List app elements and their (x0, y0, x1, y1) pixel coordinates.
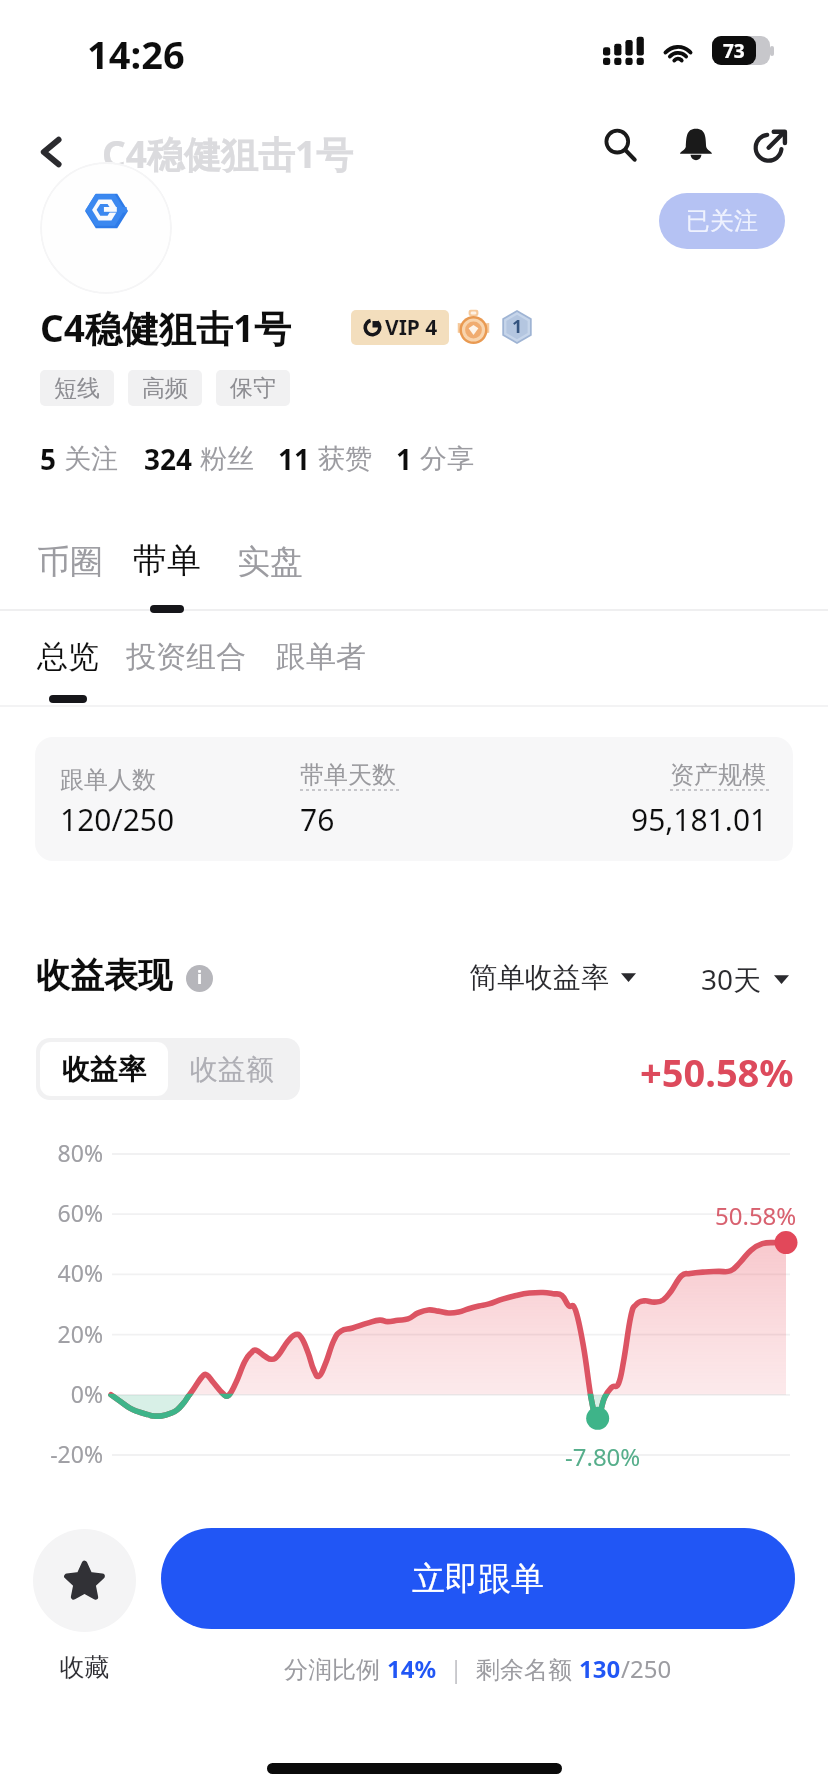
staticText: 粉丝 (200, 442, 254, 476)
staticText: -7.80% (565, 1440, 641, 1473)
staticText: 14:26 (87, 28, 185, 80)
button[interactable] (33, 1529, 136, 1632)
button[interactable]: 币圈 (37, 531, 103, 638)
staticText: 币圈 (37, 541, 103, 583)
staticText: 324 (144, 440, 193, 478)
staticText: /250 (621, 1652, 672, 1685)
staticText: 60% (0, 1197, 103, 1228)
staticText: 76 (300, 799, 335, 840)
button[interactable]: 已关注 (659, 193, 785, 249)
staticText: 短线 (54, 374, 100, 403)
button[interactable]: 1 (396, 440, 474, 478)
staticText: 5 (40, 440, 57, 478)
staticText: 30天 (701, 960, 762, 998)
button[interactable]: 总览 (37, 627, 99, 732)
staticText: 分享 (420, 442, 474, 476)
button[interactable]: 投资组合 (126, 628, 246, 732)
staticText: 总览 (37, 637, 99, 676)
staticText: +50.58% (640, 1046, 794, 1098)
button[interactable]: Share (744, 117, 800, 173)
staticText: 50.58% (715, 1199, 797, 1232)
staticText: 保守 (230, 374, 276, 403)
staticText: VIP 4 (385, 313, 438, 342)
staticText: 1 (512, 314, 523, 339)
staticText: 0% (0, 1378, 103, 1409)
staticText: 跟单者 (276, 638, 366, 676)
button[interactable]: 带单 (133, 529, 201, 637)
button[interactable]: 30天 (698, 952, 792, 1006)
button[interactable]: 立即跟单 (161, 1528, 795, 1629)
staticText: 资产规模 (670, 760, 766, 790)
staticText: 立即跟单 (412, 1558, 544, 1600)
staticText: 40% (0, 1257, 103, 1288)
staticText: 11 (278, 440, 311, 478)
button[interactable]: 跟单者 (276, 628, 366, 732)
staticText: 关注 (64, 442, 118, 476)
staticText: 130 (579, 1652, 621, 1685)
staticText: 收益额 (190, 1052, 274, 1087)
button[interactable]: 11 (278, 440, 372, 478)
button[interactable]: 收益额 (168, 1042, 296, 1096)
staticText: 120/250 (60, 799, 175, 840)
staticText: 收益率 (62, 1052, 146, 1087)
button[interactable]: Back (22, 123, 80, 181)
button[interactable]: 324 (144, 440, 254, 478)
button[interactable]: 收益率 (40, 1042, 168, 1096)
staticText: 20% (0, 1318, 103, 1349)
staticText: -20% (0, 1438, 103, 1469)
staticText: 1 (396, 440, 413, 478)
staticText: 收藏 (33, 1652, 136, 1683)
staticText: 带单天数 (300, 760, 396, 790)
staticText: 14% (387, 1652, 437, 1685)
staticText: 收益表现 (36, 954, 172, 997)
button[interactable]: 简单收益率 (466, 952, 639, 1003)
button[interactable]: Notifications (668, 117, 724, 173)
staticText: 实盘 (237, 541, 303, 583)
staticText: 获赞 (318, 442, 372, 476)
staticText: C4稳健狙击1号 (102, 128, 354, 179)
staticText: 带单 (133, 539, 201, 582)
staticText: 分润比例 (284, 1652, 387, 1685)
staticText: 跟单人数 (60, 765, 156, 795)
staticText: i (197, 966, 203, 989)
button[interactable]: 5 (40, 440, 118, 478)
staticText: 80% (0, 1137, 103, 1168)
button[interactable]: Search (592, 117, 648, 173)
staticText: | (437, 1652, 476, 1685)
staticText: 95,181.01 (631, 799, 768, 840)
button[interactable]: Info (186, 965, 213, 992)
staticText: 简单收益率 (469, 960, 609, 995)
staticText: 投资组合 (126, 638, 246, 676)
button[interactable]: 实盘 (237, 531, 303, 638)
staticText: 73 (723, 38, 745, 64)
staticText: C4稳健狙击1号 (40, 302, 292, 353)
staticText: 已关注 (686, 206, 758, 236)
staticText: 剩余名额 (476, 1652, 579, 1685)
staticText: 高频 (142, 374, 188, 403)
